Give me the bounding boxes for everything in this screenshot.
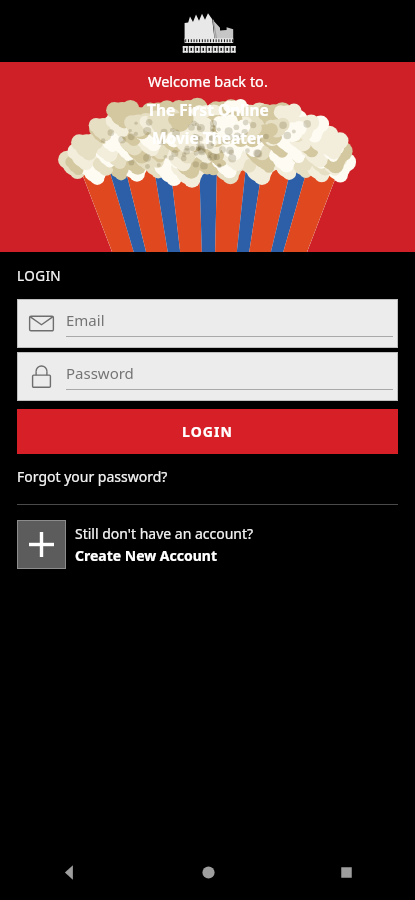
button[interactable]: Email [17,299,398,348]
staticText: Email [66,310,105,330]
button[interactable]: Forgot your password? [17,464,398,489]
staticText: Password [66,363,134,383]
staticText: Create New Account [75,546,218,565]
button[interactable]: Create new account [17,520,398,569]
staticText: Welcome back to. [148,71,268,91]
other: Create new account [17,520,66,569]
staticText: LOGIN [182,422,234,441]
button[interactable]: Password [17,352,398,401]
button[interactable]: Recent apps [277,844,415,900]
button[interactable]: Cinesseum logo [178,8,238,55]
staticText: Still don't have an account? [75,524,254,543]
button[interactable]: Home [139,844,277,900]
staticText: LOGIN [17,267,62,285]
staticText: The First Online [147,99,269,120]
button[interactable]: Back [0,844,139,900]
button[interactable]: LOGIN [17,409,398,454]
staticText: Forgot your password? [17,467,168,486]
staticText: Movie Theater [152,127,264,148]
